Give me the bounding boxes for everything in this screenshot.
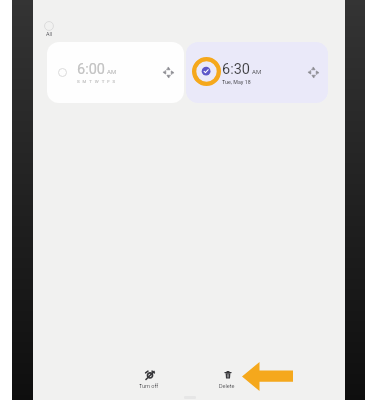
button[interactable]: Turn off — [128, 370, 170, 389]
button[interactable]: Reorder alarm — [161, 65, 175, 79]
staticText: Delete — [219, 383, 235, 389]
other: Pointer arrow — [242, 362, 293, 391]
staticText: AM — [107, 68, 117, 75]
staticText: S M T W T F S — [77, 79, 117, 84]
staticText: Turn off — [139, 383, 159, 389]
staticText: 6:30 — [222, 61, 250, 78]
staticText: Tue, May 18 — [222, 79, 251, 85]
staticText: All — [46, 31, 53, 37]
staticText: 6:00 — [77, 61, 105, 78]
button[interactable]: Delete — [206, 370, 248, 389]
button[interactable]: Reorder alarm — [306, 65, 320, 79]
button[interactable]: 6:00 — [47, 42, 184, 103]
button[interactable]: All — [36, 16, 58, 40]
staticText: AM — [252, 68, 262, 75]
button[interactable]: 6:30 — [186, 42, 328, 103]
